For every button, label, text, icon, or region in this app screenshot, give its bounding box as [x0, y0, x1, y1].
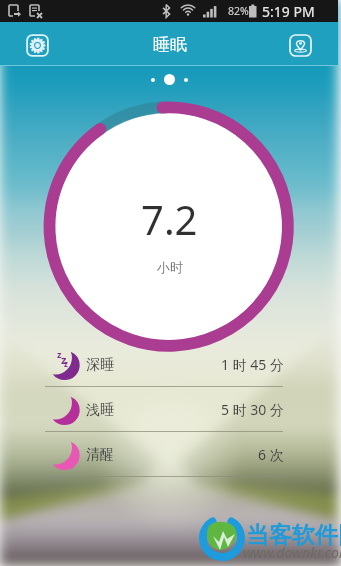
- staticText: 5 时 30 分: [221, 400, 284, 419]
- staticText: z: [64, 358, 68, 369]
- staticText: 7.2: [141, 192, 198, 246]
- button[interactable]: 清醒: [0, 432, 341, 477]
- staticText: 清醒: [86, 446, 114, 464]
- staticText: 当客软件园: [246, 521, 341, 550]
- staticText: z: [61, 352, 67, 367]
- button[interactable]: Location: [289, 34, 312, 57]
- staticText: 5:19 PM: [262, 2, 315, 21]
- button[interactable]: z: [0, 342, 341, 387]
- staticText: www.downkr.com: [243, 543, 341, 562]
- staticText: z: [57, 348, 62, 360]
- staticText: 深睡: [86, 356, 114, 374]
- staticText: 睡眠: [153, 34, 187, 55]
- staticText: 小时: [157, 259, 183, 275]
- button[interactable]: Settings: [26, 34, 49, 57]
- staticText: 82%: [228, 4, 249, 18]
- staticText: 6 次: [258, 445, 284, 464]
- staticText: 1 时 45 分: [221, 355, 284, 374]
- button[interactable]: 浅睡: [0, 387, 341, 432]
- staticText: 浅睡: [86, 401, 114, 419]
